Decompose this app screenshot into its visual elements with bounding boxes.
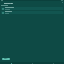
- button[interactable]: Start: [2, 58, 10, 60]
- button[interactable]: Tab 1: [0, 62, 22, 64]
- button[interactable]: Tab 2: [22, 62, 43, 64]
- button[interactable]: [2, 7, 62, 10]
- staticText: Start: [4, 58, 8, 60]
- button[interactable]: [2, 11, 62, 14]
- staticText: Dashboard: [4, 2, 13, 4]
- button[interactable]: Tab 3: [43, 62, 64, 64]
